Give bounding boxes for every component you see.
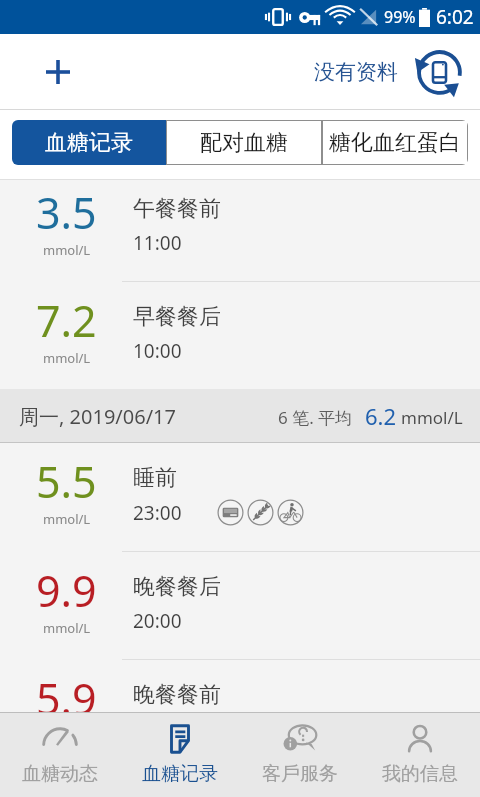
staticText: 3.5 <box>36 183 97 242</box>
staticText: 10:00 <box>133 338 182 364</box>
staticText: 晚餐餐后 <box>133 573 221 601</box>
staticText: 23:00 <box>133 500 182 526</box>
staticText: 午餐餐前 <box>133 195 221 223</box>
staticText: 6 笔. 平均 <box>278 406 353 429</box>
staticText: 周一, 2019/06/17 <box>19 403 176 430</box>
button[interactable]: 血糖记录 <box>12 120 166 165</box>
staticText: 血糖动态 <box>22 762 98 786</box>
button[interactable]: 5.5 <box>0 443 480 551</box>
staticText: 11:00 <box>133 230 182 256</box>
button[interactable]: 5.9 <box>0 660 480 712</box>
button[interactable]: 3.5 <box>0 180 480 281</box>
button[interactable]: 客戶服务 <box>240 713 360 797</box>
button[interactable]: 血糖动态 <box>0 713 120 797</box>
staticText: mmol/L <box>43 510 91 528</box>
staticText: 早餐餐后 <box>133 303 221 331</box>
staticText: mmol/L <box>43 349 91 367</box>
button[interactable]: 我的信息 <box>360 713 480 797</box>
staticText: mmol/L <box>401 406 463 429</box>
staticText: 配对血糖 <box>200 129 288 157</box>
staticText: 5.5 <box>36 452 97 511</box>
button[interactable]: 血糖记录 <box>120 713 240 797</box>
staticText: 糖化血红蛋白 <box>329 129 461 157</box>
button[interactable]: 没有资料 <box>312 49 400 95</box>
staticText: 客戶服务 <box>262 762 338 786</box>
button[interactable]: 配对血糖 <box>166 120 322 165</box>
staticText: 6.2 <box>365 401 397 431</box>
staticText: 6:02 <box>436 4 474 30</box>
button[interactable]: Sync meter <box>412 45 466 99</box>
staticText: 血糖记录 <box>45 129 133 157</box>
staticText: 晚餐餐前 <box>133 681 221 709</box>
button[interactable]: Add record <box>34 48 82 96</box>
staticText: 9.9 <box>36 561 97 620</box>
button[interactable]: 9.9 <box>0 552 480 659</box>
staticText: 没有资料 <box>314 59 398 85</box>
staticText: 5.9 <box>36 669 97 721</box>
staticText: 20:00 <box>133 608 182 634</box>
staticText: 睡前 <box>133 464 177 492</box>
staticText: 7.2 <box>36 291 97 350</box>
staticText: mmol/L <box>43 619 91 637</box>
staticText: 血糖记录 <box>142 762 218 786</box>
staticText: mmol/L <box>43 241 91 259</box>
staticText: 我的信息 <box>382 762 458 786</box>
staticText: 99% <box>384 6 416 28</box>
button[interactable]: 7.2 <box>0 282 480 389</box>
button[interactable]: 糖化血红蛋白 <box>322 120 468 165</box>
